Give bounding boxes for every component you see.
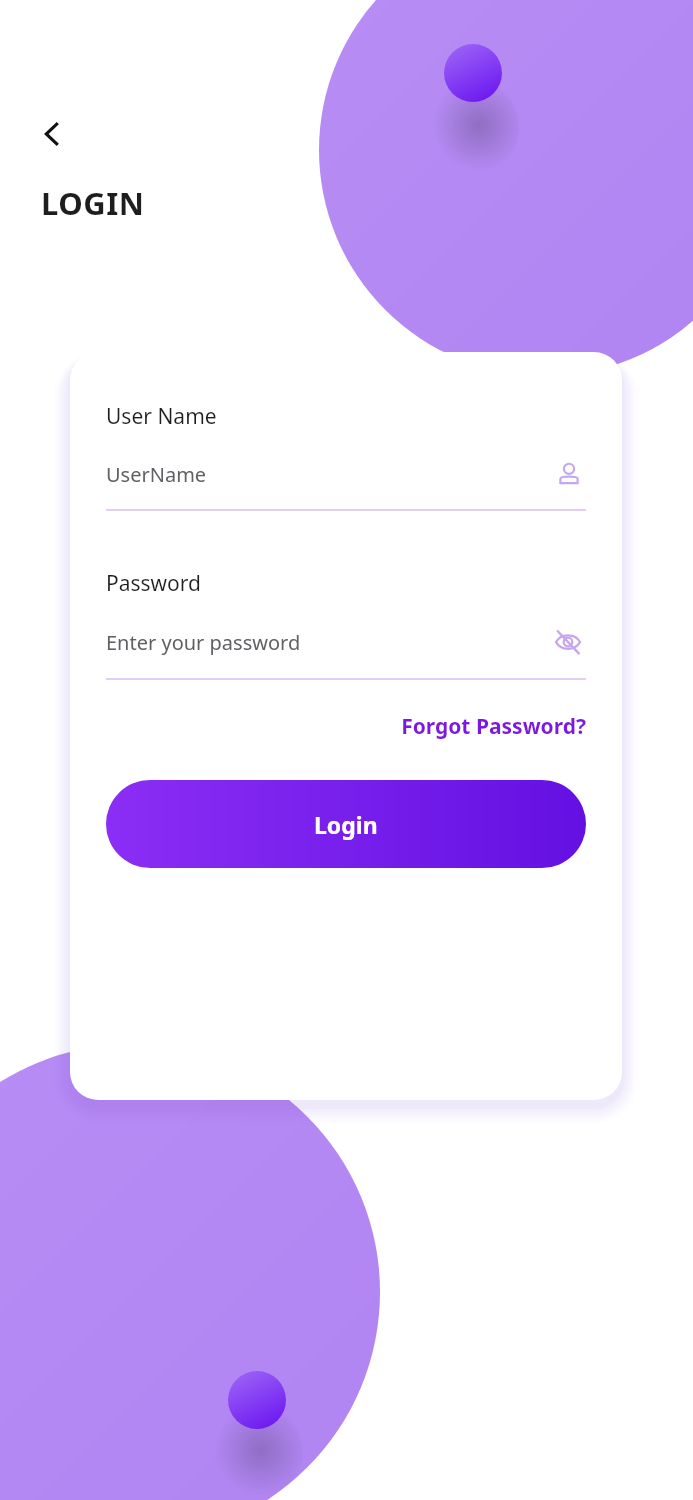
staticText: Login <box>314 809 378 840</box>
staticText: LOGIN <box>41 182 145 224</box>
button[interactable]: Enter your password <box>106 624 586 660</box>
button[interactable]: UserName <box>106 457 586 491</box>
button[interactable]: Forgot Password? <box>401 706 586 747</box>
staticText: Password <box>106 569 201 598</box>
staticText: Forgot Password? <box>401 712 586 741</box>
other: User <box>552 457 586 491</box>
button[interactable]: Back <box>30 112 74 156</box>
staticText: UserName <box>106 461 552 488</box>
staticText: User Name <box>106 402 217 431</box>
button[interactable]: Login <box>106 780 586 868</box>
staticText: Enter your password <box>106 629 550 656</box>
button[interactable]: Show password <box>550 624 586 660</box>
